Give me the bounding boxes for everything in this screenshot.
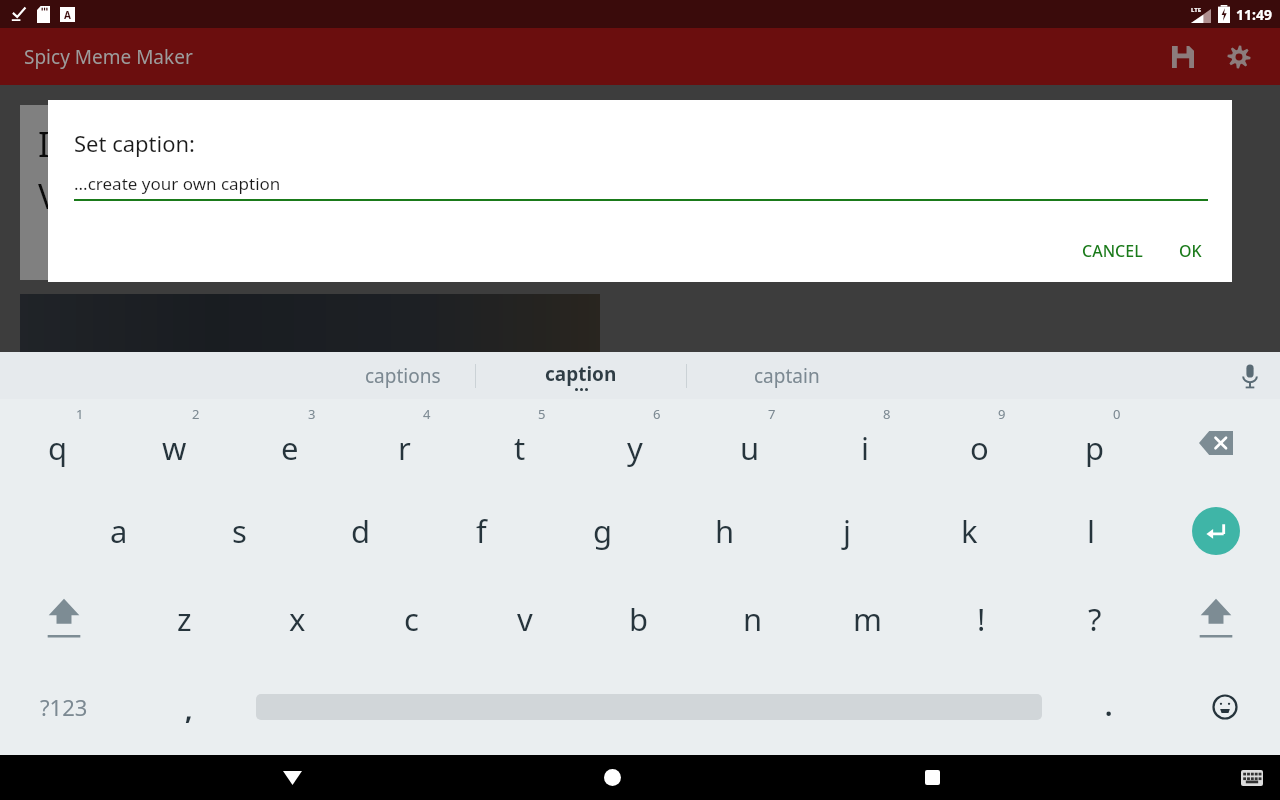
staticText: captain bbox=[754, 363, 820, 389]
button[interactable]: OK bbox=[1165, 230, 1216, 272]
button[interactable]: l bbox=[1030, 487, 1152, 575]
staticText: o bbox=[970, 427, 989, 469]
staticText: A bbox=[64, 8, 71, 22]
staticText: Very deep and sad bbox=[38, 173, 333, 219]
button[interactable]: , bbox=[128, 663, 250, 751]
staticText: a bbox=[110, 510, 128, 552]
button[interactable]: a bbox=[58, 487, 179, 575]
button[interactable]: c bbox=[354, 575, 468, 663]
staticText: caption bbox=[545, 361, 617, 387]
button[interactable]: g bbox=[542, 487, 664, 575]
staticText: , bbox=[185, 692, 193, 727]
staticText: w bbox=[162, 427, 187, 469]
staticText: d bbox=[351, 510, 371, 552]
button[interactable]: 9 bbox=[922, 399, 1037, 487]
staticText: q bbox=[48, 427, 68, 469]
staticText: ...create your own caption bbox=[74, 172, 281, 195]
button[interactable]: . bbox=[1048, 663, 1170, 751]
button[interactable]: h bbox=[664, 487, 786, 575]
staticText: CANCEL bbox=[1082, 240, 1143, 262]
staticText: 5 bbox=[538, 405, 546, 423]
button[interactable]: ? bbox=[1038, 575, 1152, 663]
button[interactable]: Enter bbox=[1152, 487, 1280, 575]
button[interactable]: z bbox=[128, 575, 241, 663]
staticText: Spicy Meme Maker bbox=[24, 44, 193, 70]
staticText: OK bbox=[1179, 240, 1202, 262]
button[interactable]: Recent apps bbox=[904, 755, 960, 800]
staticText: 2 bbox=[192, 405, 200, 423]
staticText: f bbox=[476, 510, 487, 552]
staticText: ?123 bbox=[40, 692, 88, 722]
staticText: z bbox=[177, 598, 192, 640]
staticText: h bbox=[715, 510, 735, 552]
staticText: g bbox=[593, 510, 613, 552]
button[interactable]: Home bbox=[584, 755, 640, 800]
staticText: r bbox=[398, 427, 411, 469]
staticText: t bbox=[514, 427, 526, 469]
button[interactable]: ?123 bbox=[0, 663, 128, 751]
staticText: y bbox=[627, 427, 643, 469]
button[interactable]: Emoji bbox=[1170, 663, 1280, 751]
button[interactable]: Switch keyboard bbox=[1224, 755, 1280, 800]
button[interactable]: ! bbox=[924, 575, 1038, 663]
staticText: i bbox=[861, 427, 869, 469]
button[interactable]: v bbox=[468, 575, 582, 663]
staticText: 0 bbox=[1113, 405, 1121, 423]
staticText: n bbox=[743, 598, 763, 640]
staticText: ! bbox=[977, 598, 986, 640]
staticText: s bbox=[232, 510, 247, 552]
button[interactable]: 1 bbox=[0, 399, 116, 487]
staticText: k bbox=[961, 510, 978, 552]
button[interactable]: b bbox=[582, 575, 696, 663]
button[interactable]: Shift bbox=[1152, 575, 1280, 663]
staticText: LTE bbox=[1191, 6, 1202, 14]
staticText: x bbox=[289, 598, 306, 640]
button[interactable]: d bbox=[300, 487, 421, 575]
button[interactable]: Backspace bbox=[1152, 399, 1280, 487]
button[interactable]: Shift bbox=[0, 575, 128, 663]
staticText: m bbox=[853, 598, 882, 640]
button[interactable]: n bbox=[696, 575, 810, 663]
button[interactable]: CANCEL bbox=[1068, 230, 1157, 272]
button[interactable]: Space bbox=[250, 663, 1048, 751]
staticText: j bbox=[843, 510, 851, 552]
staticText: 7 bbox=[768, 405, 776, 423]
staticText: 1 bbox=[76, 405, 84, 423]
button[interactable]: x bbox=[241, 575, 354, 663]
staticText: Set caption: bbox=[74, 128, 196, 158]
button[interactable]: captain bbox=[687, 352, 887, 399]
staticText: Insert caption here bbox=[38, 121, 342, 167]
button[interactable]: k bbox=[908, 487, 1030, 575]
button[interactable]: m bbox=[810, 575, 924, 663]
staticText: 4 bbox=[423, 405, 431, 423]
button[interactable]: Back bbox=[264, 755, 320, 800]
button[interactable]: 2 bbox=[116, 399, 232, 487]
button[interactable]: f bbox=[421, 487, 542, 575]
button[interactable]: caption bbox=[476, 352, 686, 399]
button[interactable]: 6 bbox=[577, 399, 692, 487]
button[interactable]: 4 bbox=[347, 399, 462, 487]
button[interactable]: Settings bbox=[1216, 34, 1262, 80]
staticText: l bbox=[1087, 510, 1095, 552]
staticText: e bbox=[281, 427, 299, 469]
button[interactable]: 7 bbox=[692, 399, 807, 487]
button[interactable]: 3 bbox=[232, 399, 347, 487]
staticText: c bbox=[404, 598, 419, 640]
staticText: b bbox=[629, 598, 649, 640]
button[interactable]: captions bbox=[330, 352, 475, 399]
staticText: captions bbox=[365, 363, 441, 389]
staticText: 3 bbox=[308, 405, 316, 423]
staticText: v bbox=[517, 598, 533, 640]
staticText: 11:49 bbox=[1236, 5, 1272, 24]
staticText: 9 bbox=[998, 405, 1006, 423]
button[interactable]: 8 bbox=[807, 399, 922, 487]
button[interactable]: 5 bbox=[462, 399, 577, 487]
button[interactable]: j bbox=[786, 487, 908, 575]
staticText: . bbox=[1105, 688, 1113, 723]
staticText: 6 bbox=[653, 405, 661, 423]
button[interactable]: Save bbox=[1160, 34, 1206, 80]
staticText: 8 bbox=[883, 405, 891, 423]
button[interactable]: s bbox=[179, 487, 300, 575]
button[interactable]: Voice input bbox=[1220, 352, 1280, 399]
button[interactable]: 0 bbox=[1037, 399, 1152, 487]
